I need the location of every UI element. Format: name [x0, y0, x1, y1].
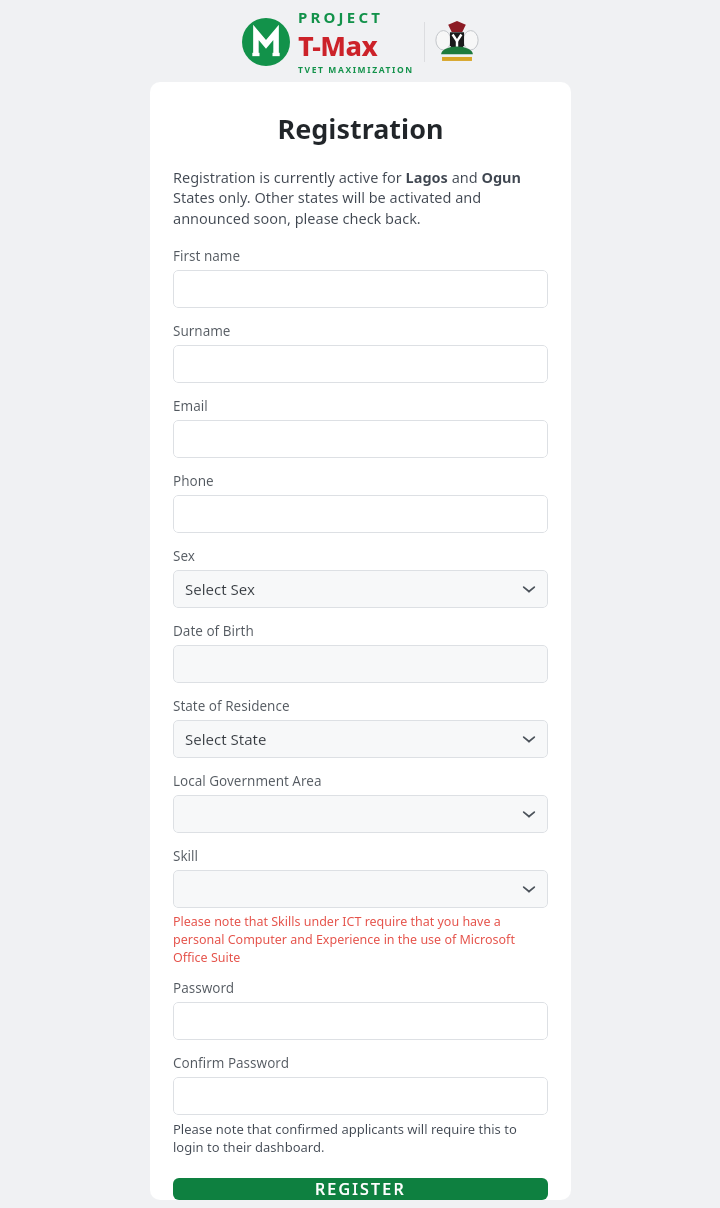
staticText: State of Residence — [173, 697, 290, 715]
staticText: Surname — [173, 322, 231, 340]
staticText: Please note that Skills under ICT requir… — [173, 913, 548, 966]
staticText: Email — [173, 397, 208, 415]
button[interactable]: Select option — [173, 870, 548, 908]
staticText: Select State — [185, 729, 267, 749]
staticText: Local Government Area — [173, 772, 322, 790]
staticText: Phone — [173, 472, 214, 490]
button[interactable] — [173, 1002, 548, 1040]
staticText: First name — [173, 247, 241, 265]
button[interactable] — [173, 1077, 548, 1115]
staticText: TVET MAXIMIZATION — [298, 64, 414, 76]
button[interactable] — [173, 420, 548, 458]
button[interactable] — [173, 345, 548, 383]
button[interactable] — [173, 645, 548, 683]
staticText: Sex — [173, 547, 195, 565]
staticText: REGISTER — [315, 1178, 406, 1200]
staticText: T-Max — [298, 27, 378, 64]
staticText: Registration — [173, 110, 548, 147]
staticText: Skill — [173, 847, 199, 865]
button[interactable]: REGISTER — [173, 1178, 548, 1200]
button[interactable] — [173, 495, 548, 533]
staticText: Select Sex — [185, 579, 255, 599]
staticText: PROJECT — [298, 7, 384, 27]
staticText: Date of Birth — [173, 622, 254, 640]
button[interactable]: Select option — [173, 795, 548, 833]
staticText: Password — [173, 979, 235, 997]
staticText: Confirm Password — [173, 1054, 289, 1072]
staticText: Please note that confirmed applicants wi… — [173, 1120, 548, 1156]
staticText: Registration is currently active for Lag… — [173, 167, 548, 229]
button[interactable]: Select State — [173, 720, 548, 758]
button[interactable] — [173, 270, 548, 308]
button[interactable]: Select Sex — [173, 570, 548, 608]
